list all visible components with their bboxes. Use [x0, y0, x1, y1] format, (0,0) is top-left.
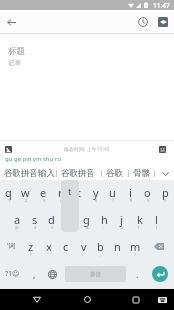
staticText: 1	[8, 198, 11, 203]
staticText: 标题	[8, 46, 25, 57]
button[interactable]: r	[52, 179, 69, 205]
button[interactable]: k	[131, 206, 148, 232]
staticText: "	[47, 252, 49, 257]
button[interactable]: 骨骼	[131, 166, 151, 181]
staticText: 4	[60, 198, 63, 203]
button[interactable]: d	[43, 206, 60, 232]
button[interactable]: e	[35, 179, 52, 205]
staticText: :	[82, 252, 84, 257]
button[interactable]: q	[0, 179, 17, 205]
staticText: *	[30, 252, 33, 257]
staticText: z	[28, 239, 34, 254]
staticText: &	[86, 225, 89, 230]
staticText: ,	[33, 268, 36, 280]
staticText: 谷歌拼音输入	[4, 168, 55, 179]
staticText: a	[14, 212, 21, 227]
staticText: 拼音	[90, 271, 101, 278]
button[interactable]: l	[148, 206, 165, 232]
staticText: d	[48, 212, 55, 227]
staticText: n	[114, 239, 121, 254]
button[interactable]: 谷歌	[105, 166, 124, 181]
button[interactable]: More options	[154, 13, 172, 31]
staticText: @	[15, 225, 19, 230]
staticText: o	[144, 185, 151, 200]
staticText: gu ge pin yin shu ru	[5, 155, 62, 163]
button[interactable]: More candidates	[156, 166, 174, 181]
staticText: -	[103, 225, 105, 230]
button[interactable]: s	[26, 206, 43, 232]
button[interactable]: Enter	[152, 266, 168, 282]
staticText: e	[40, 185, 47, 200]
button[interactable]: Back	[29, 289, 45, 310]
staticText: i	[129, 185, 132, 200]
button[interactable]: a	[9, 206, 26, 232]
staticText: j	[120, 212, 123, 227]
staticText: c	[63, 239, 69, 254]
button[interactable]: .	[129, 261, 145, 287]
staticText: k	[137, 212, 143, 227]
staticText: 谷歌拼音	[61, 168, 95, 179]
button[interactable]: Home	[79, 289, 95, 310]
button[interactable]: i	[122, 179, 139, 205]
button[interactable]: Backspace	[145, 233, 173, 259]
staticText: ‘词	[7, 241, 16, 251]
staticText: 2	[25, 198, 28, 203]
staticText: .	[136, 268, 139, 280]
staticText: 6	[95, 198, 98, 203]
button[interactable]: Reminder	[134, 13, 152, 31]
button[interactable]: ,	[26, 261, 42, 287]
staticText: 5	[77, 198, 80, 203]
button[interactable]: h	[96, 206, 113, 232]
staticText: +	[121, 225, 124, 230]
button[interactable]: p	[157, 179, 174, 205]
button[interactable]: Input languages	[43, 261, 61, 287]
staticText: #	[34, 225, 37, 230]
button[interactable]: x	[40, 233, 57, 259]
button[interactable]: 谷歌拼音输入	[2, 166, 56, 181]
staticText: '	[66, 252, 67, 257]
staticText: m	[130, 239, 141, 254]
button[interactable]: c	[57, 233, 74, 259]
staticText: b	[97, 239, 104, 254]
staticText: r	[58, 185, 63, 200]
staticText: t	[68, 185, 72, 197]
staticText: 11:47	[153, 1, 170, 10]
button[interactable]: n	[109, 233, 126, 259]
button[interactable]: Switch language	[0, 233, 22, 259]
staticText: t	[77, 185, 81, 200]
staticText: ?1☺	[5, 269, 20, 279]
staticText: 骨骼	[133, 168, 150, 179]
button[interactable]: Key preview	[61, 180, 79, 232]
staticText: x	[46, 239, 52, 254]
button[interactable]: g	[78, 206, 95, 232]
button[interactable]: m	[127, 233, 144, 259]
button[interactable]: Recent apps	[128, 289, 144, 310]
button[interactable]: 谷歌拼音	[60, 166, 96, 181]
button[interactable]: 拼音	[65, 266, 126, 282]
button[interactable]: Back	[2, 13, 20, 31]
button[interactable]: j	[113, 206, 130, 232]
button[interactable]: w	[17, 179, 34, 205]
button[interactable]: Insert image	[5, 146, 12, 153]
button[interactable]: o	[139, 179, 156, 205]
button[interactable]: z	[22, 233, 39, 259]
staticText: u	[109, 185, 116, 200]
button[interactable]: Keyboard settings	[159, 146, 166, 153]
button[interactable]: b	[92, 233, 109, 259]
button[interactable]: Hide keyboard	[154, 289, 170, 310]
staticText: w	[21, 185, 30, 200]
staticText: ¥	[51, 225, 54, 230]
button[interactable]: t	[70, 179, 87, 205]
staticText: 9	[147, 198, 150, 203]
button[interactable]: y	[87, 179, 104, 205]
staticText: h	[101, 212, 108, 227]
staticText: l	[155, 212, 158, 227]
button[interactable]: Symbols	[0, 261, 24, 287]
staticText: p	[162, 185, 169, 200]
button[interactable]: u	[104, 179, 121, 205]
staticText: 3	[43, 198, 46, 203]
staticText: y	[93, 185, 99, 200]
button[interactable]: v	[75, 233, 92, 259]
